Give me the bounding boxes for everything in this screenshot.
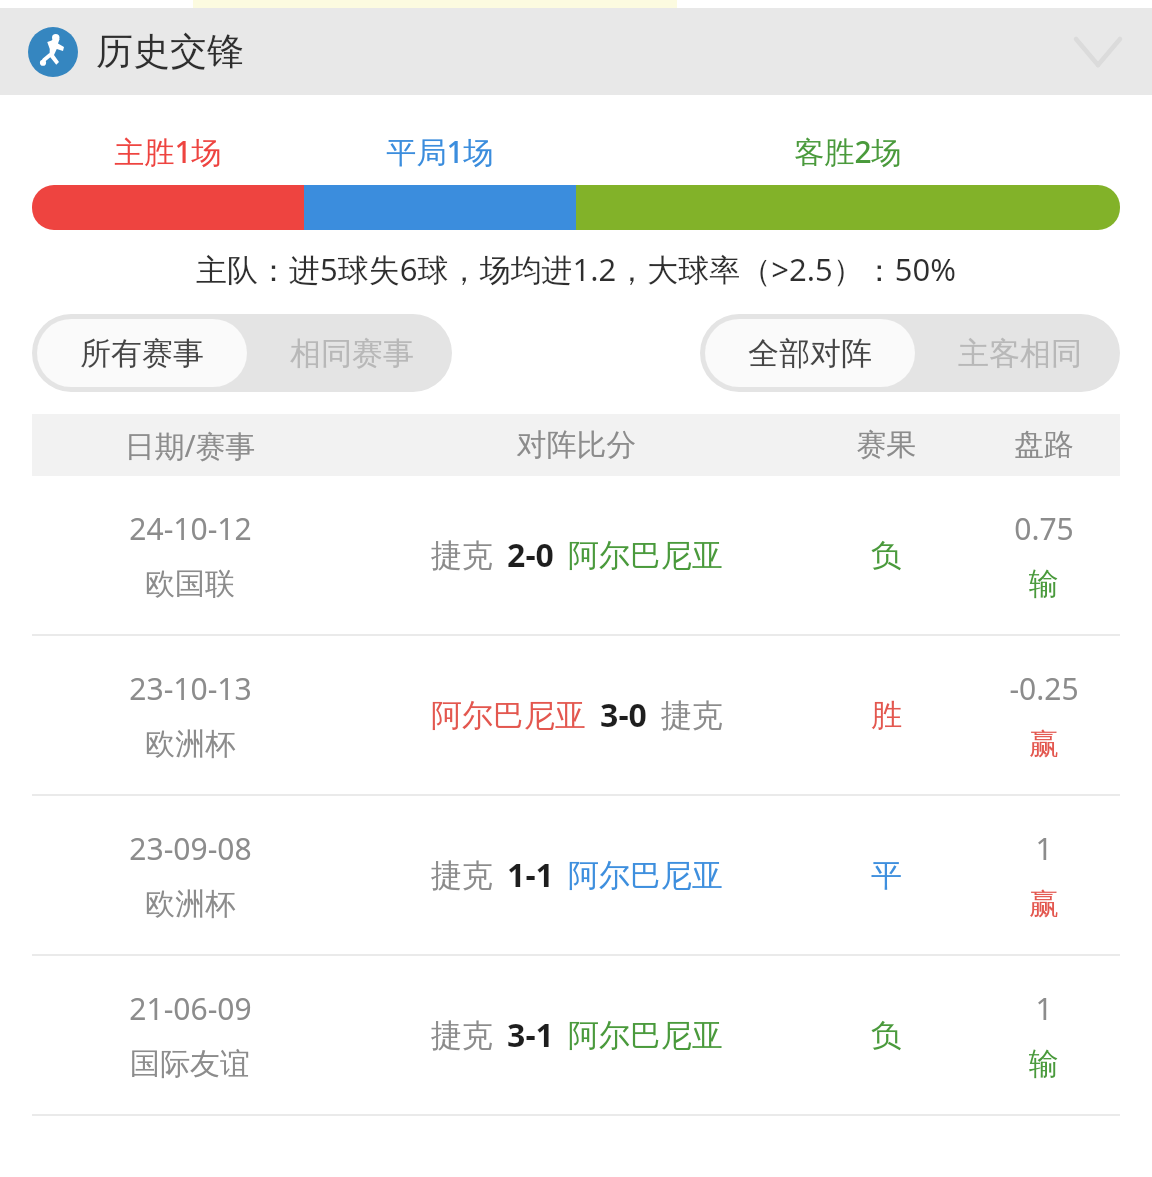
button[interactable]: 23-09-08: [0, 796, 1152, 954]
staticText: 捷克: [431, 856, 493, 895]
staticText: 胜: [805, 696, 968, 735]
staticText: 赢: [1029, 725, 1059, 763]
staticText: 21-06-09: [129, 988, 252, 1029]
other: Collapse: [1072, 32, 1124, 72]
staticText: 赢: [1029, 885, 1059, 923]
button[interactable]: 23-10-13: [0, 636, 1152, 794]
staticText: 主队：进5球失6球，场均进1.2，大球率（>2.5）：50%: [0, 248, 1152, 290]
staticText: 客胜2场: [576, 131, 1120, 172]
button[interactable]: 21-06-09: [0, 956, 1152, 1114]
staticText: 欧国联: [145, 565, 235, 603]
staticText: 盘路: [968, 426, 1120, 464]
staticText: 平: [805, 856, 968, 895]
staticText: 主胜1场: [32, 131, 304, 172]
staticText: 欧洲杯: [145, 725, 235, 763]
staticText: 所有赛事: [80, 334, 204, 373]
staticText: 3-1: [507, 1013, 554, 1057]
staticText: 欧洲杯: [145, 885, 235, 923]
staticText: 捷克: [661, 696, 723, 735]
staticText: 23-09-08: [129, 828, 252, 869]
button[interactable]: 24-10-12: [0, 476, 1152, 634]
staticText: 历史交锋: [96, 28, 244, 75]
staticText: 平局1场: [304, 131, 576, 172]
staticText: 23-10-13: [129, 668, 252, 709]
button[interactable]: 全部对阵: [705, 319, 915, 387]
staticText: 捷克: [431, 536, 493, 575]
staticText: 主客相同: [958, 334, 1082, 373]
staticText: 1: [1035, 988, 1053, 1029]
button[interactable]: 历史交锋: [0, 8, 1152, 95]
staticText: 3-0: [600, 693, 647, 737]
staticText: 日期/赛事: [32, 425, 348, 466]
staticText: 2-0: [507, 533, 554, 577]
staticText: 输: [1029, 565, 1059, 603]
button[interactable]: 主客相同: [920, 314, 1120, 392]
button[interactable]: 所有赛事: [37, 319, 247, 387]
staticText: 负: [805, 536, 968, 575]
staticText: 0.75: [1014, 508, 1074, 549]
staticText: 阿尔巴尼亚: [568, 856, 723, 895]
staticText: 输: [1029, 1045, 1059, 1083]
button[interactable]: 相同赛事: [252, 314, 452, 392]
staticText: 全部对阵: [748, 334, 872, 373]
staticText: 阿尔巴尼亚: [568, 1016, 723, 1055]
staticText: 1-1: [507, 853, 554, 897]
staticText: 1: [1035, 828, 1053, 869]
staticText: 赛果: [805, 426, 968, 464]
staticText: 阿尔巴尼亚: [568, 536, 723, 575]
staticText: 国际友谊: [130, 1045, 250, 1083]
staticText: 对阵比分: [348, 426, 805, 464]
staticText: 负: [805, 1016, 968, 1055]
staticText: 捷克: [431, 1016, 493, 1055]
staticText: 阿尔巴尼亚: [431, 696, 586, 735]
staticText: -0.25: [1009, 668, 1079, 709]
staticText: 24-10-12: [129, 508, 252, 549]
staticText: 相同赛事: [290, 334, 414, 373]
